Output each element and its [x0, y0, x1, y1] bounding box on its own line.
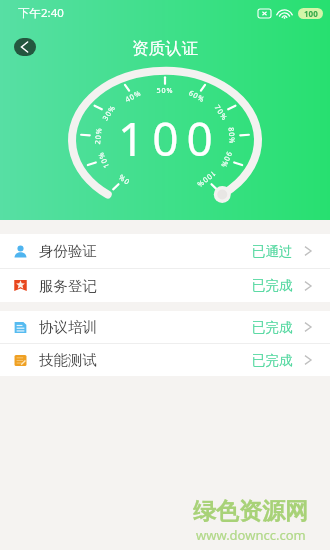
- staticText: 绿色资源网: [193, 497, 308, 526]
- staticText: 已完成: [252, 319, 293, 336]
- staticText: 已完成: [252, 352, 293, 369]
- staticText: 已完成: [252, 277, 293, 294]
- staticText: www.downcc.com: [196, 526, 306, 544]
- button[interactable]: 身份验证: [0, 234, 330, 268]
- button[interactable]: 技能测试: [0, 344, 330, 376]
- staticText: 资质认证: [132, 38, 198, 59]
- button[interactable]: 服务登记: [0, 269, 330, 302]
- staticText: 服务登记: [39, 277, 97, 295]
- staticText: 100: [304, 8, 318, 19]
- button[interactable]: 协议培训: [0, 311, 330, 343]
- staticText: 身份验证: [39, 242, 97, 260]
- button[interactable]: Back: [14, 38, 36, 56]
- staticText: 100: [118, 107, 221, 170]
- staticText: 协议培训: [39, 318, 97, 336]
- staticText: 下午2:40: [18, 5, 64, 21]
- staticText: 已通过: [252, 243, 293, 260]
- staticText: 技能测试: [39, 351, 97, 369]
